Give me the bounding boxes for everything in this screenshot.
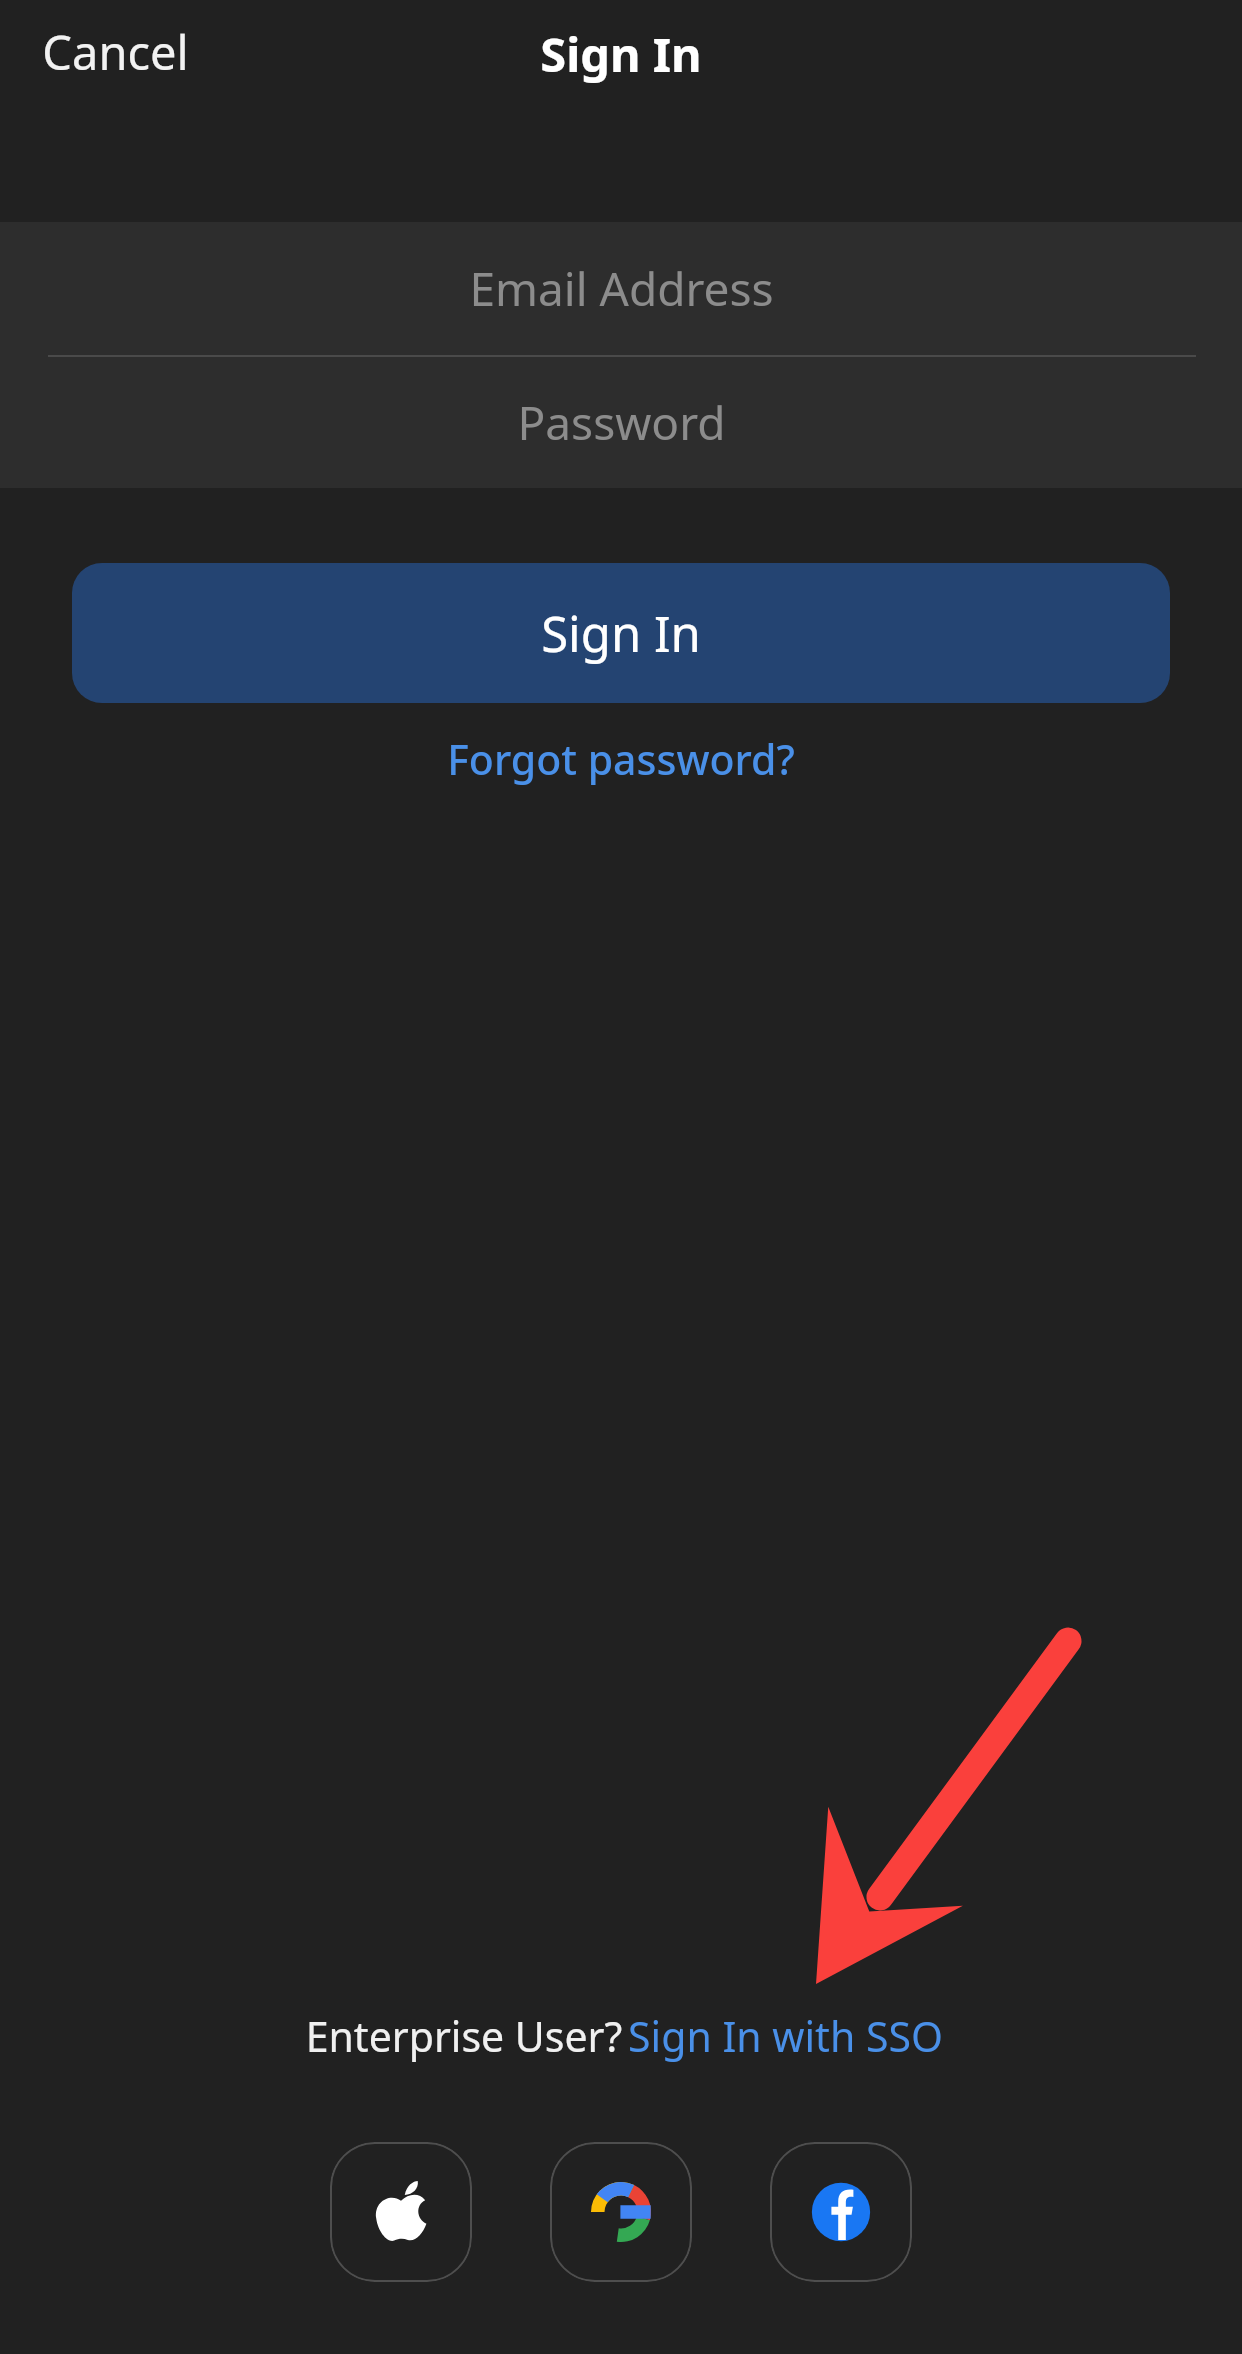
staticText: Sign In bbox=[540, 22, 702, 86]
staticText: Sign In bbox=[541, 600, 701, 667]
staticText: Sign In with SSO bbox=[628, 2008, 943, 2064]
button[interactable]: Sign In with SSO bbox=[628, 2008, 943, 2064]
button[interactable]: Sign In bbox=[72, 563, 1170, 703]
button[interactable]: Forgot password? bbox=[419, 719, 823, 799]
button[interactable]: Sign in with Google bbox=[550, 2142, 692, 2282]
staticText: Password bbox=[517, 391, 726, 454]
button[interactable]: Email Address bbox=[0, 222, 1242, 355]
button[interactable]: Cancel bbox=[22, 6, 209, 98]
button[interactable]: Password bbox=[0, 357, 1242, 488]
staticText: Enterprise User? bbox=[300, 2008, 628, 2064]
button[interactable]: Sign in with Facebook bbox=[770, 2142, 912, 2282]
staticText: Cancel bbox=[42, 20, 189, 84]
staticText: Email Address bbox=[469, 257, 774, 320]
staticText: Forgot password? bbox=[447, 731, 795, 787]
button[interactable]: Sign in with Apple bbox=[330, 2142, 472, 2282]
